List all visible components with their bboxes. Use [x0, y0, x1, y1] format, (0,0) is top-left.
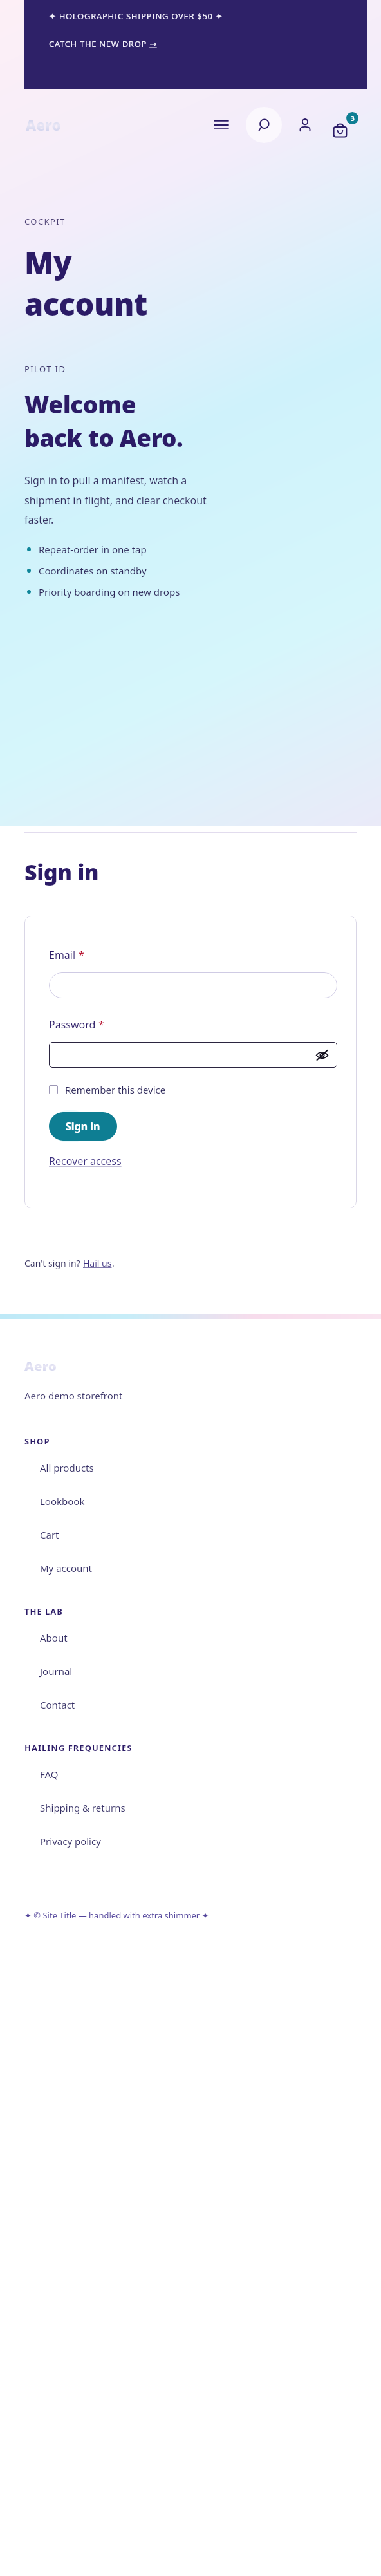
staticText: Recover access [49, 1154, 122, 1168]
staticText: Password [49, 1018, 98, 1032]
staticText: Welcome back to Aero. [24, 388, 183, 454]
button[interactable]: CATCH THE NEW DROP → [49, 38, 157, 50]
staticText: FAQ [40, 1768, 59, 1781]
staticText: Email [49, 948, 79, 962]
staticText: Cart [40, 1528, 59, 1541]
staticText: Sign in [66, 1119, 100, 1133]
staticText: Hail us [83, 1257, 112, 1269]
button[interactable]: Cart, 3 items [331, 110, 360, 140]
staticText: Repeat-order in one tap [39, 543, 147, 556]
staticText: Aero demo storefront [24, 1389, 123, 1402]
staticText: PILOT ID [24, 363, 66, 375]
staticText: ✦ HOLOGRAPHIC SHIPPING OVER $50 ✦ [49, 10, 223, 22]
staticText: CATCH THE NEW DROP → [49, 38, 157, 50]
staticText: Privacy policy [40, 1835, 101, 1848]
button[interactable]: Recover access [49, 1154, 122, 1168]
button[interactable]: Search [246, 107, 282, 143]
staticText: ✦ © Site Title — handled with extra shim… [24, 1909, 209, 1921]
button[interactable]: Account [291, 111, 319, 139]
button[interactable]: Show password [313, 1046, 330, 1063]
staticText: SHOP [24, 1435, 50, 1447]
staticText: . [112, 1257, 115, 1269]
staticText: 3 [351, 114, 355, 123]
staticText: Priority boarding on new drops [39, 585, 180, 598]
staticText: All products [40, 1461, 94, 1474]
button[interactable]: Cart [0, 1514, 381, 1548]
staticText: Sign in [24, 857, 99, 887]
staticText: Shipping & returns [40, 1801, 125, 1814]
staticText: Lookbook [40, 1495, 85, 1508]
staticText: HAILING FREQUENCIES [24, 1742, 133, 1754]
button[interactable]: Hail us [83, 1257, 112, 1269]
staticText: Aero [24, 1358, 57, 1375]
button[interactable]: FAQ [0, 1754, 381, 1787]
staticText: Aero [26, 115, 62, 135]
button[interactable]: Show password [49, 1042, 337, 1068]
button[interactable]: Menu [207, 111, 236, 139]
staticText: COCKPIT [24, 216, 66, 227]
staticText: About [40, 1631, 68, 1644]
button[interactable]: About [0, 1617, 381, 1651]
button[interactable]: Remember this device [49, 1083, 166, 1096]
button[interactable]: Privacy policy [0, 1821, 381, 1854]
staticText: Journal [40, 1665, 73, 1678]
button[interactable]: Lookbook [0, 1481, 381, 1514]
button[interactable]: Contact [0, 1684, 381, 1718]
staticText: * [98, 1018, 104, 1032]
button[interactable]: My account [0, 1548, 381, 1581]
staticText: Remember this device [65, 1083, 166, 1096]
staticText: Sign in to pull a manifest, watch a ship… [24, 473, 207, 526]
button[interactable]: Shipping & returns [0, 1787, 381, 1821]
staticText: Can't sign in? [24, 1257, 83, 1269]
staticText: THE LAB [24, 1605, 64, 1617]
staticText: Coordinates on standby [39, 564, 147, 577]
button[interactable]: All products [0, 1447, 381, 1481]
staticText: Contact [40, 1698, 75, 1711]
staticText: My account [24, 241, 147, 325]
staticText: * [79, 948, 84, 962]
button[interactable]: Journal [0, 1651, 381, 1684]
staticText: My account [40, 1562, 93, 1575]
button[interactable] [49, 972, 337, 998]
button[interactable]: Sign in [49, 1112, 117, 1141]
